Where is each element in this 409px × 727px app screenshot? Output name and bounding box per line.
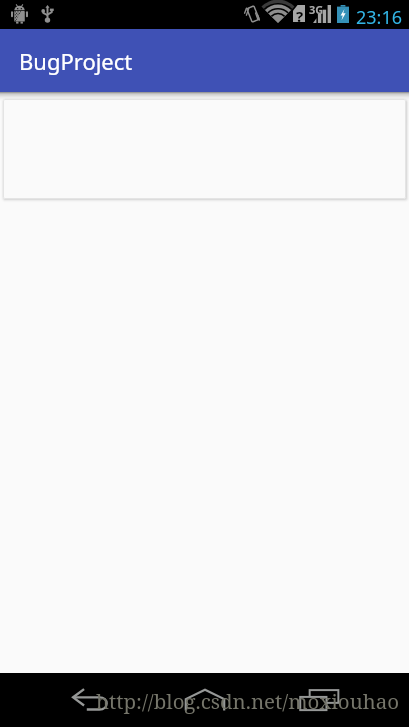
button[interactable]: Recent apps <box>299 673 340 727</box>
staticText: BugProject <box>19 46 133 76</box>
button[interactable]: Back <box>72 673 109 727</box>
staticText: ? <box>296 6 304 26</box>
staticText: 23:16 <box>356 5 403 30</box>
staticText: 3G <box>309 2 324 17</box>
button[interactable]: Home <box>185 673 225 727</box>
staticText: http://blog.csdn.net/moxiouhao <box>96 687 400 715</box>
